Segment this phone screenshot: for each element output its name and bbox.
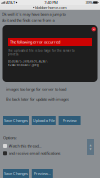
button[interactable]: Upload a File bbox=[32, 116, 56, 125]
staticText: Ok well it's may have been a jump to bbox=[1, 11, 65, 17]
button[interactable]: Save Changes bbox=[3, 169, 29, 178]
button[interactable]: Save Changes bbox=[3, 116, 29, 125]
button[interactable]: Close bbox=[91, 26, 96, 32]
staticText: Options: bbox=[3, 135, 17, 140]
staticText: The uploaded file is too large for the s… bbox=[8, 49, 75, 52]
staticText: ▼ bbox=[89, 147, 91, 150]
staticText: 82EA7B5B4A57.jpeg bbox=[8, 63, 39, 67]
staticText: Save Changes bbox=[4, 171, 28, 176]
staticText: Watch this thread... bbox=[8, 143, 41, 149]
staticText: Save Changes bbox=[4, 118, 28, 123]
staticText: do it and the finds carne from a bbox=[1, 17, 54, 23]
staticText: 39% bbox=[85, 0, 92, 5]
button[interactable]: and receive email notifications bbox=[3, 151, 60, 156]
button[interactable]: Preview bbox=[59, 116, 81, 125]
staticText: Preview bbox=[63, 118, 77, 123]
staticText: Upload a File bbox=[33, 118, 55, 123]
button[interactable]: Preview... bbox=[32, 169, 53, 178]
staticText: AT&T bbox=[6, 0, 15, 5]
staticText: Be back later for update with images bbox=[6, 96, 69, 102]
staticText: process. bbox=[8, 52, 19, 56]
staticText: ▲ bbox=[89, 143, 91, 146]
staticText: × bbox=[93, 26, 95, 32]
staticText: and receive email notifications bbox=[8, 151, 60, 156]
button[interactable]: Watch this thread... bbox=[3, 143, 41, 149]
staticText: images too large for server to load bbox=[6, 86, 66, 92]
staticText: B5IF3A75-34FE-469C-A2A7- bbox=[8, 60, 48, 63]
staticText: Preview... bbox=[34, 171, 51, 176]
staticText: The following error occurred bbox=[10, 39, 60, 45]
staticText: blabberhome.com bbox=[35, 5, 67, 10]
staticText: 7:40 PM bbox=[44, 0, 58, 5]
